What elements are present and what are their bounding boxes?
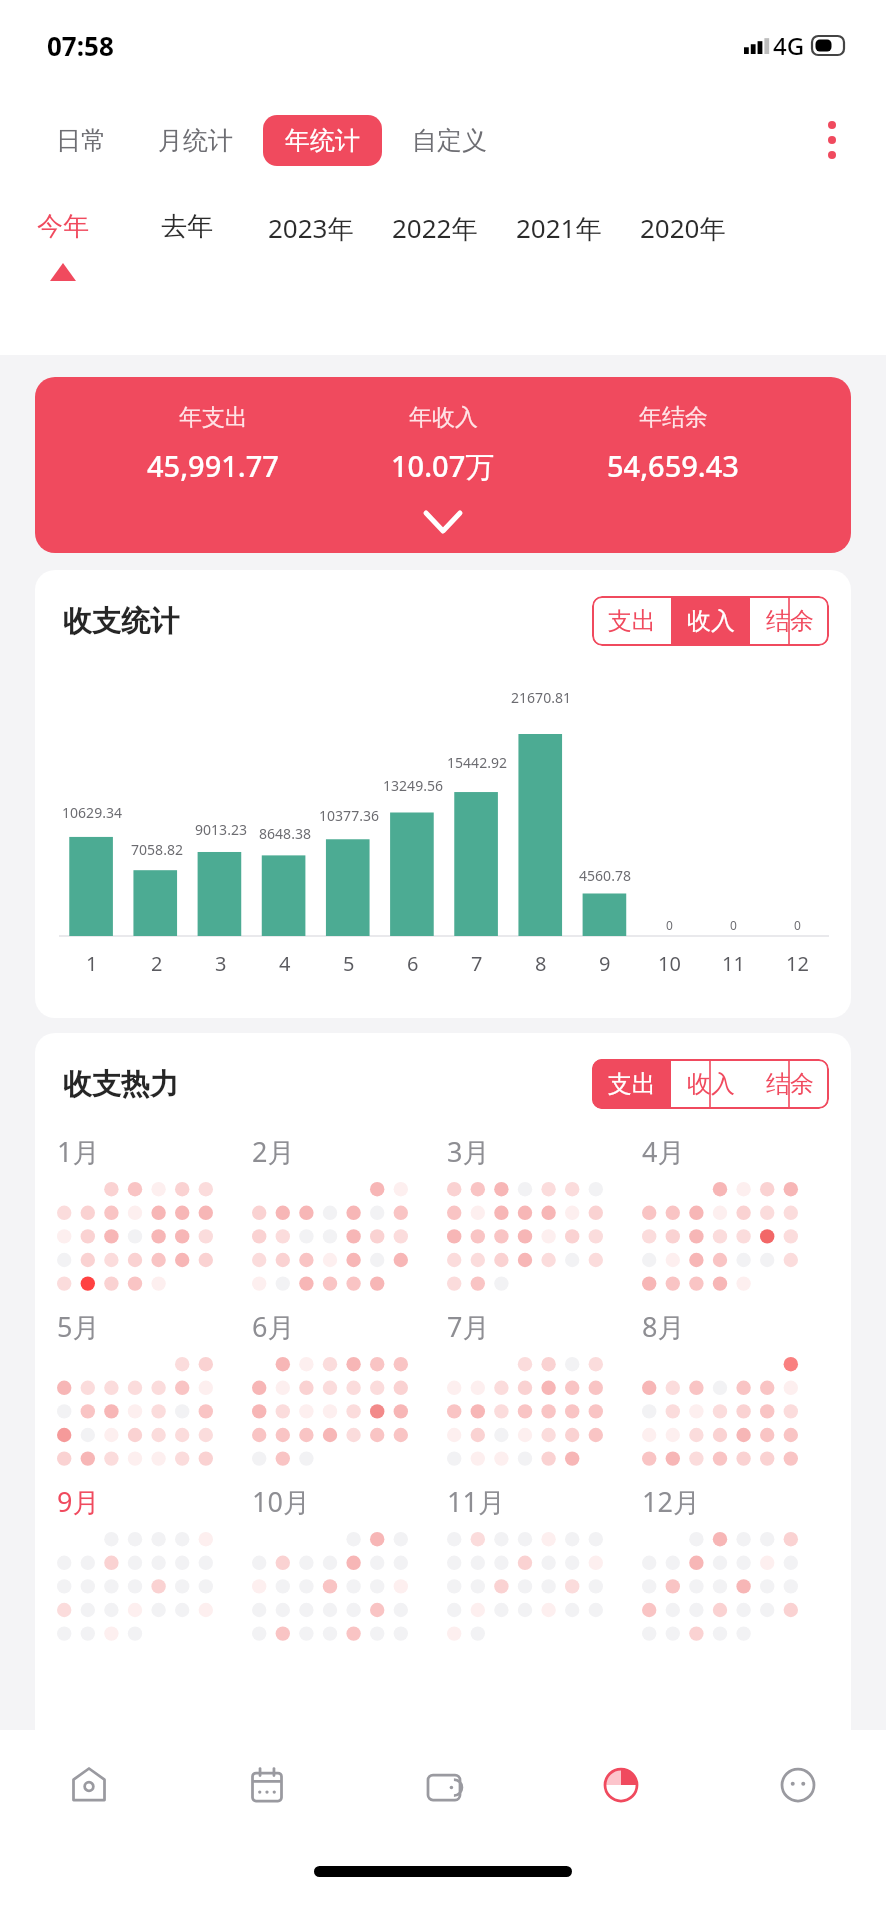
staticText: 结余 (766, 606, 814, 636)
button[interactable]: 2020年 (621, 210, 745, 246)
button[interactable]: 年支出 (35, 377, 851, 553)
button[interactable]: 支出 (592, 1059, 671, 1109)
staticText: 今年 (37, 210, 89, 243)
button[interactable]: 日常 (34, 115, 128, 166)
staticText: 7058.82 (131, 840, 183, 859)
staticText: 10377.36 (319, 806, 379, 825)
staticText: 4 (279, 950, 291, 977)
staticText: 1 (86, 950, 98, 977)
staticText: 13249.56 (383, 776, 443, 795)
button[interactable]: 2023年 (249, 210, 373, 246)
button[interactable]: 结余 (750, 1059, 829, 1109)
button[interactable]: Statistics (532, 1730, 709, 1840)
staticText: 2 (151, 950, 163, 977)
button[interactable]: 自定义 (390, 115, 509, 166)
staticText: 6 (407, 950, 419, 977)
staticText: 9 (599, 950, 611, 977)
button[interactable]: 2021年 (497, 210, 621, 246)
staticText: 4月 (642, 1133, 685, 1170)
staticText: 9013.23 (195, 820, 247, 839)
staticText: 9月 (57, 1483, 100, 1520)
staticText: 10 (658, 950, 681, 977)
button[interactable]: More options (804, 112, 860, 168)
staticText: 8 (535, 950, 547, 977)
staticText: 8648.38 (259, 824, 311, 843)
button[interactable]: 支出 (592, 596, 671, 646)
button[interactable]: 收入 (671, 596, 750, 646)
staticText: 3月 (447, 1133, 490, 1170)
button[interactable]: 2022年 (373, 210, 497, 246)
button[interactable]: 月统计 (136, 115, 255, 166)
staticText: 年收入 (409, 403, 478, 432)
staticText: 2020年 (640, 210, 726, 246)
staticText: 2021年 (516, 210, 602, 246)
staticText: 去年 (161, 210, 213, 243)
staticText: 54,659.43 (607, 446, 739, 485)
staticText: 12 (786, 950, 809, 977)
staticText: 支出 (608, 606, 656, 636)
button[interactable]: More (709, 1730, 886, 1840)
staticText: 11月 (447, 1483, 505, 1520)
staticText: 07:58 (47, 28, 114, 63)
button[interactable]: Home (0, 1730, 178, 1840)
button[interactable]: 结余 (750, 596, 829, 646)
staticText: 0 (666, 917, 673, 933)
staticText: 21670.81 (511, 688, 571, 707)
staticText: 2月 (252, 1133, 295, 1170)
staticText: 0 (730, 917, 737, 933)
staticText: 3 (215, 950, 227, 977)
staticText: 年统计 (285, 125, 360, 156)
staticText: 5月 (57, 1308, 100, 1345)
staticText: 月统计 (158, 125, 233, 156)
staticText: 10月 (252, 1483, 310, 1520)
staticText: 45,991.77 (147, 446, 279, 485)
staticText: 12月 (642, 1483, 700, 1520)
staticText: 结余 (766, 1069, 814, 1099)
button[interactable]: Wallet (355, 1730, 532, 1840)
staticText: 2023年 (268, 210, 354, 246)
staticText: 日常 (56, 125, 106, 156)
staticText: 收入 (687, 606, 735, 636)
staticText: 收入 (687, 1069, 735, 1099)
button[interactable]: 年统计 (263, 115, 382, 166)
staticText: 10629.34 (62, 803, 122, 822)
staticText: 7 (471, 950, 483, 977)
staticText: 10.07万 (391, 446, 495, 486)
staticText: 0 (794, 917, 801, 933)
staticText: 支出 (608, 1069, 656, 1099)
staticText: 自定义 (412, 125, 487, 156)
staticText: 收支热力 (63, 1066, 179, 1103)
staticText: 6月 (252, 1308, 295, 1345)
staticText: 7月 (447, 1308, 490, 1345)
button[interactable]: Calendar (178, 1730, 355, 1840)
staticText: 5 (343, 950, 355, 977)
staticText: 年结余 (639, 403, 708, 432)
staticText: 2022年 (392, 210, 478, 246)
staticText: 年支出 (179, 403, 248, 432)
staticText: 4560.78 (579, 866, 631, 885)
staticText: 11 (722, 950, 745, 977)
staticText: 收支统计 (63, 603, 179, 640)
staticText: 15442.92 (447, 753, 507, 772)
staticText: 8月 (642, 1308, 685, 1345)
button[interactable]: 去年 (125, 210, 249, 243)
staticText: 1月 (57, 1133, 100, 1170)
button[interactable]: 收入 (671, 1059, 750, 1109)
staticText: 4G (773, 29, 805, 62)
button[interactable]: 今年 (0, 210, 125, 281)
